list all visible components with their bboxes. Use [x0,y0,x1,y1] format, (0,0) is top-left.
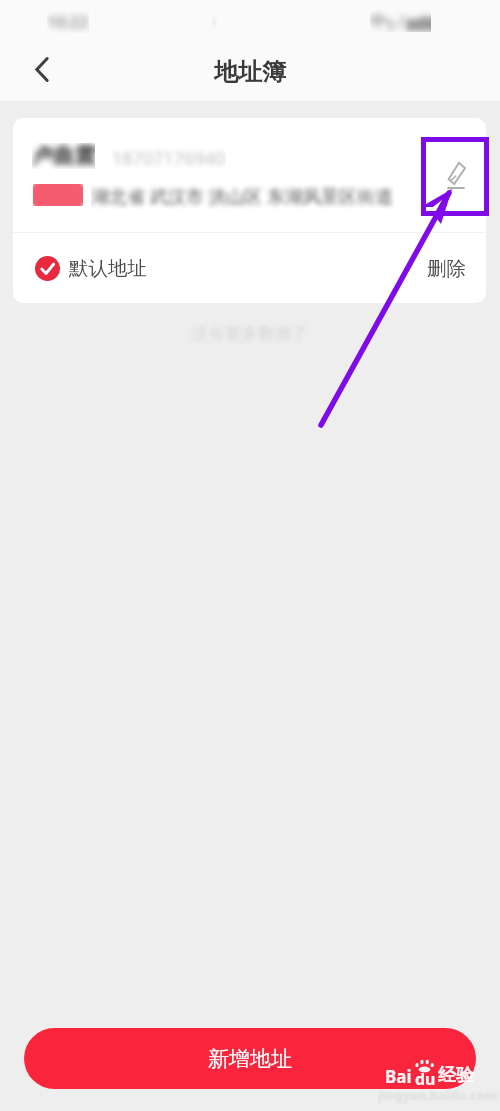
staticText: · [212,11,217,34]
staticText: 10:22 [47,11,89,33]
button[interactable]: 默认地址 [35,248,147,289]
staticText: 删除 [427,256,466,281]
staticText: 18707176940 [112,146,226,171]
button[interactable]: Back [0,43,76,101]
staticText: 新增地址 [208,1046,292,1072]
staticText: 地址簿 [214,57,286,87]
staticText: 湖北省 武汉市 洪山区 东湖风景区街道 [91,184,394,209]
staticText: 默认地址 [69,256,147,281]
staticText: 中┓.⁄ ▅▆ [370,10,431,32]
staticText: Bai [385,1065,412,1088]
staticText: 经验 [438,1064,474,1087]
staticText: 没有更多数据了 [0,324,500,344]
staticText: jingyan.baidu.com [378,1086,498,1104]
staticText: du [415,1068,436,1090]
button[interactable]: 删除 [423,246,470,291]
button[interactable]: Edit address [432,148,484,206]
button[interactable]: 新增地址 [24,1028,476,1089]
staticText: 卢曲震 [32,143,95,169]
